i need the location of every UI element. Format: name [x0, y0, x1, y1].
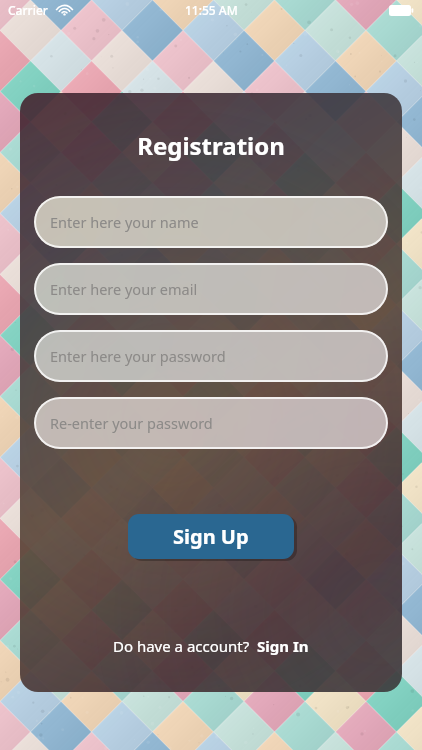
- staticText: Re-enter your password: [50, 413, 213, 433]
- button[interactable]: Sign Up: [128, 514, 294, 559]
- button[interactable]: Enter here your email: [34, 263, 388, 315]
- button[interactable]: Enter here your name: [34, 196, 388, 248]
- staticText: Do have a account? Sign In: [113, 636, 309, 656]
- staticText: Enter here your email: [50, 279, 198, 299]
- staticText: Sign Up: [173, 523, 249, 550]
- staticText: Carrier: [8, 2, 48, 18]
- button[interactable]: Do have a account? Sign In: [107, 632, 315, 660]
- staticText: Enter here your password: [50, 346, 226, 366]
- staticText: Registration: [137, 129, 285, 162]
- button[interactable]: Enter here your password: [34, 330, 388, 382]
- button[interactable]: Re-enter your password: [34, 397, 388, 449]
- staticText: 11:55 AM: [185, 2, 238, 18]
- staticText: Enter here your name: [50, 212, 199, 232]
